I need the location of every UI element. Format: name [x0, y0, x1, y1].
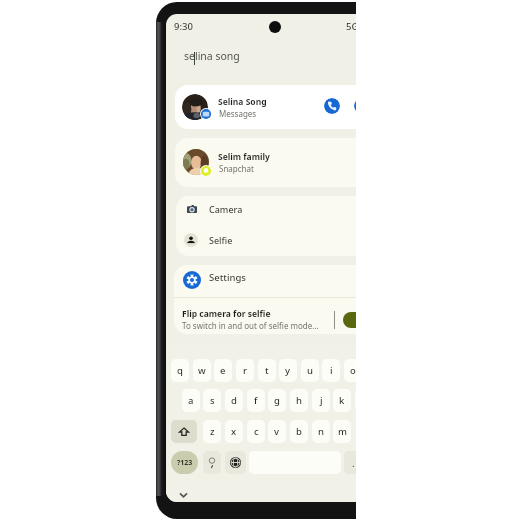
- staticText: o: [350, 364, 356, 377]
- staticText: c: [254, 425, 259, 438]
- button[interactable]: u: [301, 359, 319, 382]
- staticText: r: [243, 364, 248, 377]
- staticText: 5G: [346, 20, 359, 33]
- button[interactable]: o: [344, 359, 362, 382]
- staticText: Selfie: [209, 234, 233, 246]
- button[interactable]: z: [203, 420, 221, 443]
- staticText: Settings: [209, 271, 246, 284]
- staticText: Snapchat: [219, 163, 254, 174]
- staticText: selina song: [184, 49, 240, 63]
- button[interactable]: Call: [324, 98, 340, 114]
- button[interactable]: e: [214, 359, 232, 382]
- staticText: Messages: [219, 108, 257, 119]
- button[interactable]: i: [322, 359, 340, 382]
- button[interactable]: g: [268, 389, 286, 412]
- button[interactable]: v: [268, 420, 286, 443]
- button[interactable]: f: [247, 389, 265, 412]
- button[interactable]: m: [333, 420, 351, 443]
- button[interactable]: [176, 196, 376, 226]
- staticText: t: [265, 364, 269, 377]
- staticText: m: [338, 425, 347, 438]
- button[interactable]: l: [355, 389, 373, 412]
- staticText: d: [231, 394, 237, 407]
- staticText: 9:30: [174, 20, 193, 33]
- staticText: x: [231, 425, 237, 438]
- button[interactable]: [175, 85, 375, 129]
- staticText: n: [318, 425, 324, 438]
- staticText: e: [220, 364, 226, 377]
- staticText: a: [188, 394, 194, 407]
- button[interactable]: [175, 138, 375, 187]
- staticText: w: [198, 364, 206, 377]
- button[interactable]: Toggle flip camera for selfie: [343, 312, 369, 328]
- staticText: g: [274, 394, 280, 407]
- button[interactable]: s: [203, 389, 221, 412]
- button[interactable]: Language: [225, 451, 246, 474]
- staticText: j: [320, 394, 323, 407]
- button[interactable]: h: [290, 389, 308, 412]
- staticText: u: [307, 364, 313, 377]
- button[interactable]: y: [279, 359, 297, 382]
- staticText: Selim family: [218, 151, 270, 163]
- staticText: z: [210, 425, 215, 438]
- button[interactable]: [174, 298, 375, 335]
- button[interactable]: q: [171, 359, 189, 382]
- button[interactable]: n: [312, 420, 330, 443]
- staticText: h: [296, 394, 302, 407]
- staticText: ?123: [177, 458, 193, 468]
- staticText: k: [339, 394, 345, 407]
- staticText: To switch in and out of selfie mode…: [182, 320, 319, 331]
- staticText: b: [296, 425, 302, 438]
- button[interactable]: ?123: [171, 451, 198, 474]
- button[interactable]: x: [225, 420, 243, 443]
- staticText: Selina Song: [218, 96, 267, 108]
- staticText: Flip camera for selfie: [182, 308, 271, 320]
- staticText: .: [352, 457, 355, 469]
- button[interactable]: b: [290, 420, 308, 443]
- button[interactable]: Shift: [171, 420, 197, 443]
- button[interactable]: [174, 265, 375, 297]
- staticText: s: [210, 394, 215, 407]
- staticText: f: [254, 394, 258, 407]
- button[interactable]: c: [247, 420, 265, 443]
- staticText: y: [285, 364, 291, 377]
- button[interactable]: t: [258, 359, 276, 382]
- button[interactable]: Hide keyboard: [173, 485, 193, 502]
- button[interactable]: k: [333, 389, 351, 412]
- button[interactable]: w: [193, 359, 211, 382]
- button[interactable]: Video call: [354, 98, 370, 114]
- button[interactable]: .: [344, 451, 362, 474]
- button[interactable]: Comma: [203, 451, 221, 474]
- staticText: v: [274, 425, 280, 438]
- button[interactable]: j: [312, 389, 330, 412]
- button[interactable]: r: [236, 359, 254, 382]
- button[interactable]: [176, 226, 376, 256]
- staticText: i: [330, 364, 333, 377]
- staticText: Camera: [209, 203, 243, 215]
- button[interactable]: d: [225, 389, 243, 412]
- button[interactable]: a: [182, 389, 200, 412]
- staticText: q: [177, 364, 183, 377]
